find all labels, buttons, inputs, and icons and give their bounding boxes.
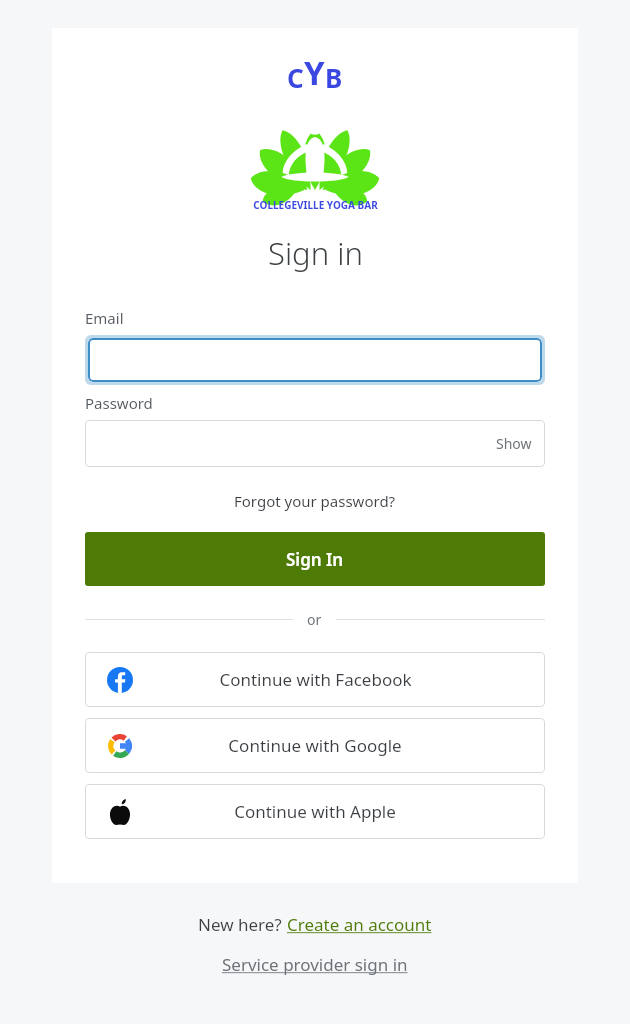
staticText: Continue with Facebook (219, 668, 412, 691)
staticText: Continue with Google (228, 734, 402, 757)
staticText: Service provider sign in (222, 953, 408, 976)
staticText: Continue with Apple (234, 800, 396, 823)
staticText: or (307, 610, 322, 629)
staticText: Y (304, 50, 325, 95)
staticText: Show (496, 434, 532, 453)
staticText: New here? (198, 913, 287, 936)
button[interactable]: Sign In (85, 532, 545, 586)
button[interactable]: Apple (85, 784, 545, 839)
other: Facebook (107, 667, 133, 693)
button[interactable]: Create an account (287, 913, 432, 936)
staticText: Sign in (268, 232, 363, 274)
staticText: COLLEGEVILLE YOGA BAR (253, 198, 378, 210)
button[interactable]: Facebook (85, 652, 545, 707)
staticText: Forgot your password? (234, 491, 396, 511)
button[interactable] (85, 335, 545, 385)
other: Google (108, 734, 132, 758)
staticText: Sign In (286, 548, 344, 571)
button[interactable]: Show (85, 420, 545, 467)
other: Apple (107, 799, 133, 825)
staticText: B (325, 60, 343, 95)
button[interactable]: Forgot your password? (234, 491, 396, 511)
button[interactable]: Service provider sign in (222, 953, 408, 976)
staticText: Email (85, 308, 124, 328)
staticText: Create an account (287, 913, 432, 936)
button[interactable]: Google (85, 718, 545, 773)
staticText: C (287, 60, 304, 95)
staticText: Password (85, 393, 153, 413)
